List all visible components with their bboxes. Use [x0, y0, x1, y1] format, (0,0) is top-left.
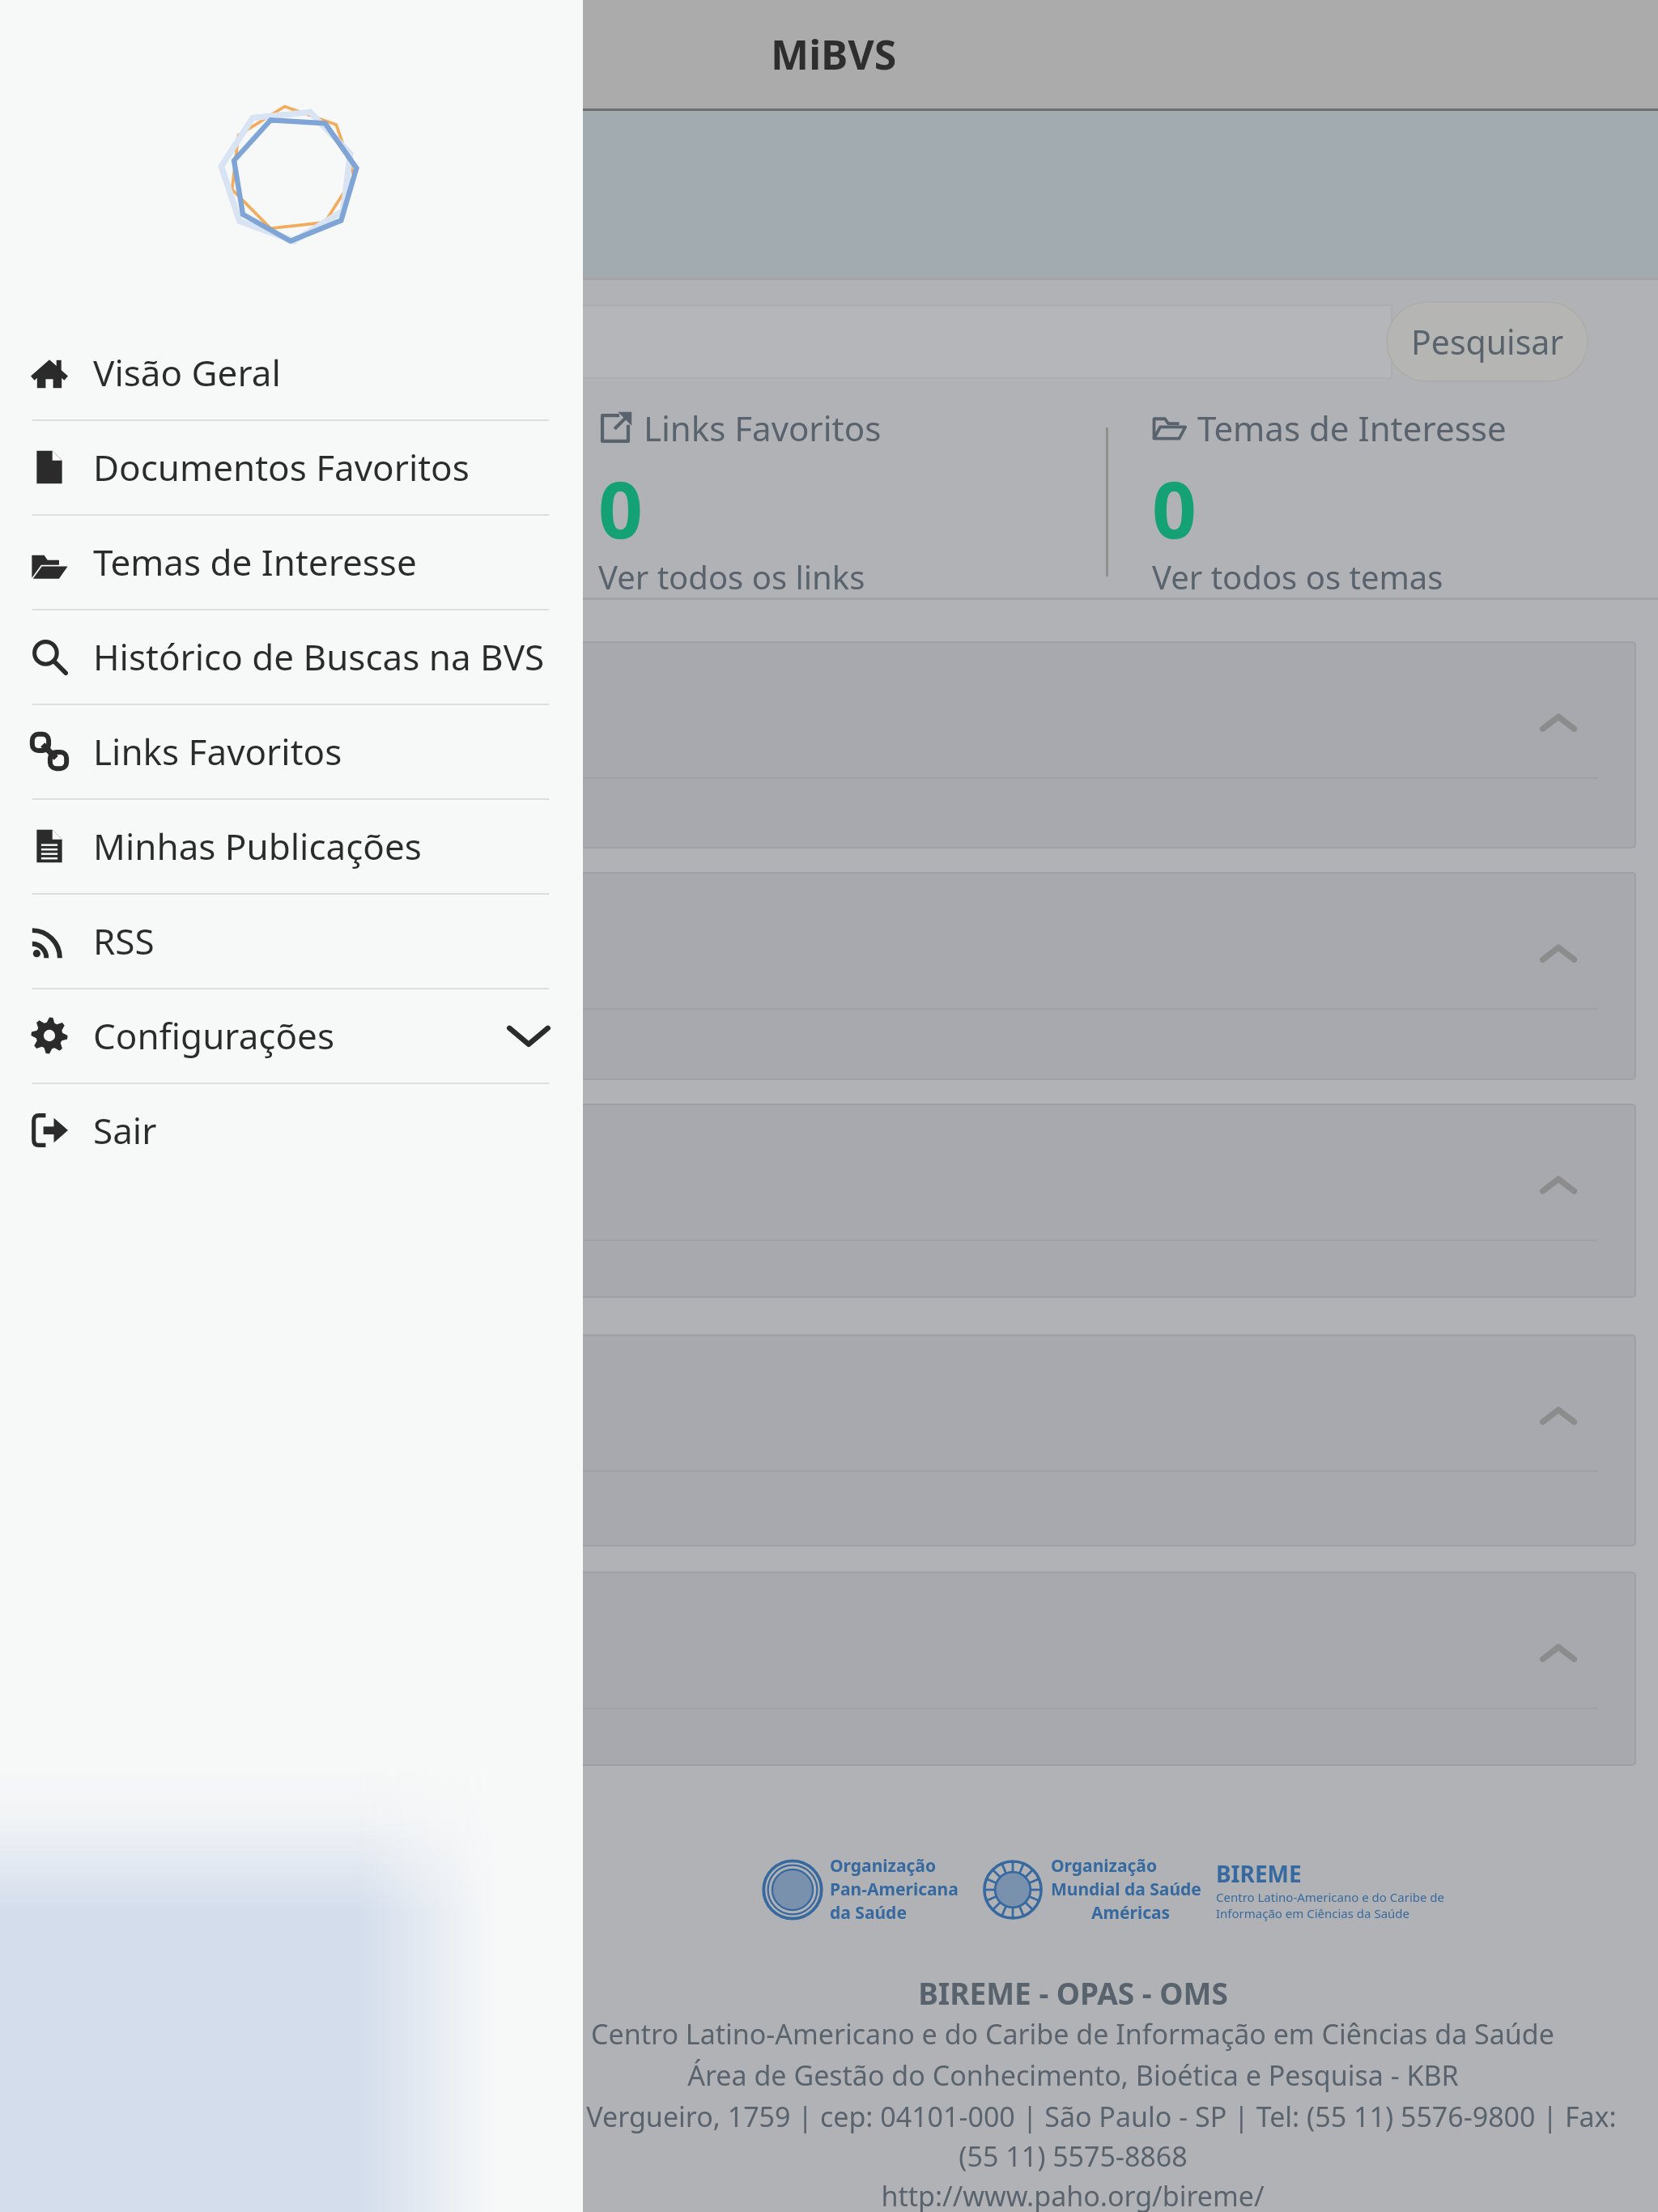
staticText: BIREME	[1216, 1858, 1302, 1889]
button[interactable]: Recolher	[512, 872, 1636, 1080]
button[interactable]: Recolher	[512, 641, 1636, 849]
staticText: MiBVS	[771, 27, 897, 82]
staticText: (55 11) 5575-8868	[959, 2138, 1188, 2175]
staticText: Área de Gestão do Conhecimento, Bioética…	[687, 2057, 1459, 2094]
button[interactable]: Documentos Favoritos	[0, 419, 583, 514]
staticText: Pan-Americana	[830, 1878, 959, 1901]
staticText: http://www.paho.org/bireme/	[881, 2177, 1265, 2212]
staticText: Informação em Ciências da Saúde	[1216, 1905, 1409, 1921]
button[interactable]: Minhas Publicações	[0, 798, 583, 893]
staticText: Temas de Interesse	[1197, 405, 1507, 451]
staticText: Ver todos os links	[598, 555, 865, 598]
staticText: 0	[598, 455, 643, 561]
staticText: Visão Geral	[93, 348, 281, 397]
button[interactable]: Temas de Interesse	[1152, 405, 1638, 591]
staticText: Ver todos os temas	[1152, 555, 1443, 598]
staticText: BIREME - OPAS - OMS	[918, 1972, 1228, 2013]
button[interactable]: RSS	[0, 893, 583, 988]
other: Recolher	[1541, 937, 1576, 972]
other: Recolher	[1541, 706, 1576, 742]
button[interactable]: Links Favoritos	[598, 405, 1084, 591]
staticText: Centro Latino-Americano e do Caribe de I…	[591, 2015, 1554, 2052]
staticText: Links Favoritos	[93, 727, 342, 776]
button[interactable]: Configurações	[0, 988, 583, 1083]
staticText: Centro Latino-Americano e do Caribe de	[1216, 1889, 1445, 1905]
staticText: Américas	[1091, 1901, 1171, 1925]
button[interactable]: Recolher	[512, 1334, 1636, 1546]
other: Expandir	[507, 1014, 551, 1057]
staticText: Configurações	[93, 1011, 334, 1060]
staticText: Organização	[1051, 1854, 1158, 1878]
staticText: da Saúde	[830, 1901, 907, 1925]
staticText: Minhas Publicações	[93, 822, 422, 870]
other: Recolher	[1541, 1168, 1576, 1204]
staticText: Documentos Favoritos	[93, 443, 470, 491]
staticText: Organização	[830, 1854, 937, 1878]
staticText: Rua Vergueiro, 1759 | cep: 04101-000 | S…	[529, 2098, 1617, 2135]
button[interactable]: Sair	[0, 1083, 583, 1177]
staticText: Links Favoritos	[644, 405, 882, 451]
other: Recolher	[1541, 1399, 1576, 1435]
button[interactable]: Temas de Interesse	[0, 514, 583, 609]
staticText: 0	[1152, 455, 1197, 561]
other: Recolher	[1541, 1636, 1576, 1672]
button[interactable]: Campo de busca	[512, 304, 1392, 379]
button[interactable]: Recolher	[512, 1572, 1636, 1766]
button[interactable]: Visão Geral	[0, 325, 583, 419]
staticText: RSS	[93, 917, 155, 965]
button[interactable]: Histórico de Buscas na BVS	[0, 609, 583, 704]
button[interactable]: Recolher	[512, 1104, 1636, 1298]
staticText: Pesquisar	[1411, 319, 1564, 364]
button[interactable]: Pesquisar	[1386, 301, 1588, 382]
staticText: Mundial da Saúde	[1051, 1878, 1201, 1901]
staticText: Temas de Interesse	[93, 538, 417, 586]
staticText: Sair	[93, 1106, 157, 1155]
button[interactable]: Links Favoritos	[0, 704, 583, 798]
staticText: Histórico de Buscas na BVS	[93, 632, 545, 681]
